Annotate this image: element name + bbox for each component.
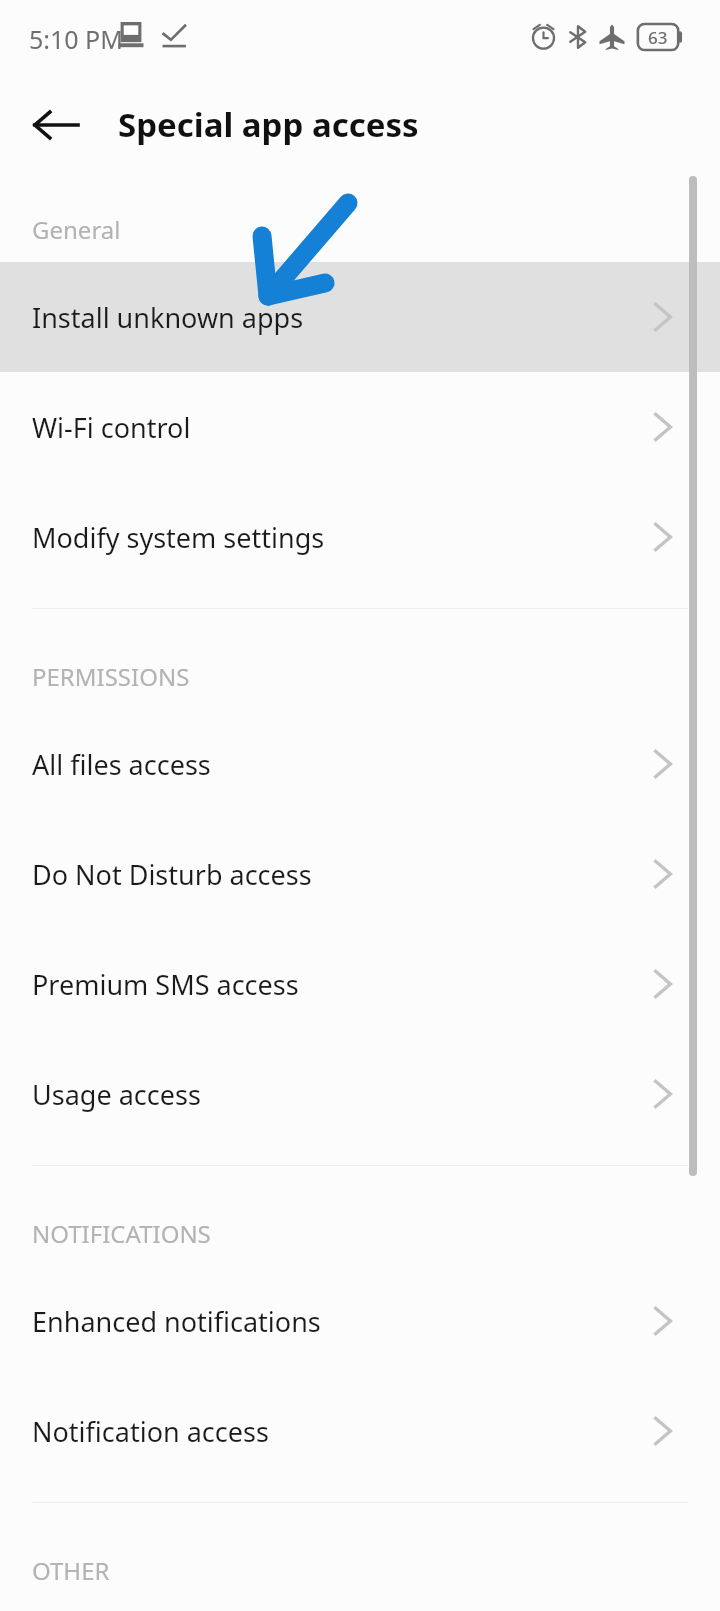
- button[interactable]: Enhanced notifications: [0, 1266, 720, 1376]
- staticText: Do Not Disturb access: [32, 856, 312, 893]
- staticText: Wi-Fi control: [32, 409, 191, 446]
- button[interactable]: All files access: [0, 709, 720, 819]
- staticText: All files access: [32, 746, 211, 783]
- staticText: Premium SMS access: [32, 966, 299, 1003]
- button[interactable]: Install unknown apps: [0, 262, 720, 372]
- staticText: General: [32, 213, 121, 246]
- staticText: OTHER: [32, 1554, 110, 1587]
- button[interactable]: Do Not Disturb access: [0, 819, 720, 929]
- staticText: PERMISSIONS: [32, 660, 190, 693]
- staticText: 63: [648, 26, 668, 49]
- button[interactable]: Wi-Fi control: [0, 372, 720, 482]
- staticText: NOTIFICATIONS: [32, 1217, 211, 1250]
- staticText: Modify system settings: [32, 519, 325, 556]
- button[interactable]: Premium SMS access: [0, 929, 720, 1039]
- staticText: Notification access: [32, 1413, 269, 1450]
- button[interactable]: Modify system settings: [0, 482, 720, 592]
- button[interactable]: Notification access: [0, 1376, 720, 1486]
- staticText: Enhanced notifications: [32, 1303, 321, 1340]
- staticText: Usage access: [32, 1076, 201, 1113]
- staticText: 5:10 PM: [29, 22, 123, 56]
- staticText: Install unknown apps: [32, 299, 304, 336]
- button[interactable]: Back: [18, 87, 94, 163]
- button[interactable]: Usage access: [0, 1039, 720, 1149]
- staticText: Special app access: [118, 102, 419, 147]
